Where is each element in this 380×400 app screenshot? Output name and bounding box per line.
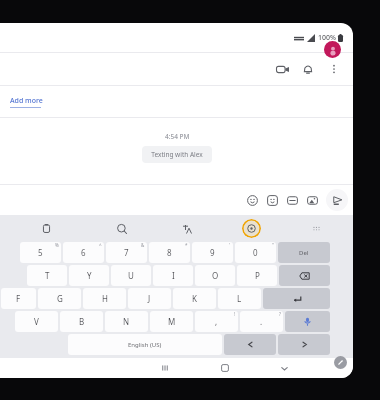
staticText: 5 [38, 247, 43, 258]
button[interactable]: Recent apps [156, 359, 174, 377]
staticText: G [57, 293, 63, 304]
button[interactable]: V [15, 311, 58, 332]
button[interactable]: M [150, 311, 193, 332]
button[interactable]: , [195, 311, 238, 332]
staticText: 0 [253, 247, 258, 258]
button[interactable]: Clipboard [37, 219, 56, 238]
button[interactable]: Keyboard settings [242, 219, 261, 238]
staticText: B [79, 316, 85, 327]
staticText: ? [279, 311, 281, 317]
button[interactable]: Hide keyboard [275, 359, 293, 377]
staticText: M [168, 316, 176, 327]
staticText: P [255, 270, 260, 281]
button[interactable]: Emoji [242, 190, 262, 210]
staticText: 8 [167, 247, 172, 258]
staticText: H [102, 293, 108, 304]
button[interactable]: Texting with Alex [142, 146, 212, 163]
button[interactable]: Translate [177, 219, 196, 238]
staticText: Texting with Alex [151, 150, 203, 159]
staticText: , [215, 316, 218, 327]
staticText: L [237, 293, 242, 304]
staticText: Y [87, 270, 92, 281]
staticText: K [192, 293, 197, 304]
button[interactable]: Voice input [285, 311, 330, 332]
button[interactable]: GIF [282, 190, 302, 210]
button[interactable]: Move cursor right [278, 334, 330, 355]
staticText: 6 [81, 247, 86, 258]
staticText: 100% [318, 33, 336, 43]
button[interactable]: T [27, 265, 67, 286]
button[interactable]: J [128, 288, 171, 309]
staticText: O [212, 270, 219, 281]
staticText: . [260, 316, 263, 327]
staticText: J [148, 293, 151, 304]
staticText: ! [234, 311, 236, 317]
button[interactable]: 6 [63, 242, 104, 263]
button[interactable]: Backspace [279, 265, 330, 286]
staticText: 4:54 PM [165, 132, 190, 141]
button[interactable]: L [218, 288, 261, 309]
staticText: F [16, 293, 21, 304]
staticText: N [123, 316, 130, 327]
button[interactable]: B [60, 311, 103, 332]
button[interactable]: U [111, 265, 151, 286]
button[interactable]: 8 [149, 242, 190, 263]
staticText: I [172, 270, 175, 281]
staticText: Add more [10, 96, 43, 106]
staticText: ' [229, 242, 231, 248]
button[interactable]: Send [326, 189, 348, 211]
staticText: T [45, 270, 50, 281]
button[interactable]: 5 [20, 242, 61, 263]
button[interactable]: More [307, 219, 326, 238]
button[interactable]: K [173, 288, 216, 309]
staticText: * [185, 242, 188, 248]
staticText: & [141, 242, 145, 248]
button[interactable]: I [153, 265, 193, 286]
button[interactable]: O [195, 265, 235, 286]
staticText: V [34, 316, 39, 327]
button[interactable]: Notifications [295, 56, 321, 82]
button[interactable]: Search [112, 219, 131, 238]
button[interactable]: F [1, 288, 36, 309]
staticText: % [55, 242, 59, 248]
staticText: 7 [124, 247, 129, 258]
button[interactable]: Home [216, 359, 234, 377]
staticText: English (US) [128, 341, 162, 349]
button[interactable]: 7 [106, 242, 147, 263]
staticText: ^ [99, 242, 102, 248]
button[interactable]: G [38, 288, 81, 309]
button[interactable]: Video call [269, 56, 295, 82]
button[interactable]: English (US) [68, 334, 222, 355]
button[interactable]: H [83, 288, 126, 309]
button[interactable]: N [105, 311, 148, 332]
button[interactable]: More options [321, 56, 347, 82]
button[interactable]: P [237, 265, 277, 286]
button[interactable]: Profile [324, 41, 341, 58]
button[interactable]: Attach image [302, 190, 322, 210]
staticText: U [128, 270, 134, 281]
button[interactable]: Move cursor left [224, 334, 276, 355]
button[interactable]: . [240, 311, 283, 332]
button[interactable]: 9 [192, 242, 233, 263]
button[interactable]: Add more [8, 94, 45, 110]
button[interactable]: Enter [263, 288, 330, 309]
button[interactable]: Floating action [334, 356, 347, 369]
staticText: Del [299, 249, 309, 257]
staticText: 9 [210, 247, 215, 258]
button[interactable]: Del [278, 242, 330, 263]
button[interactable]: 0 [235, 242, 276, 263]
button[interactable]: Y [69, 265, 109, 286]
button[interactable]: Stickers [262, 190, 282, 210]
staticText: " [272, 242, 274, 248]
